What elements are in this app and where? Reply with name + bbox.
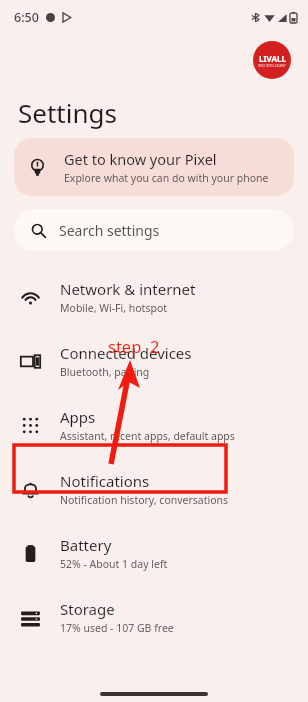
staticText: Network & internet bbox=[60, 279, 196, 299]
button[interactable]: Network & internet bbox=[0, 265, 308, 329]
staticText: Bluetooth, pairing bbox=[60, 365, 150, 379]
staticText: Storage bbox=[60, 599, 115, 619]
staticText: Assistant, recent apps, default apps bbox=[60, 429, 235, 443]
button[interactable]: Notifications bbox=[0, 457, 308, 521]
button[interactable]: Battery bbox=[0, 521, 308, 585]
staticText: Get to know your Pixel bbox=[64, 149, 217, 169]
staticText: RIDE INTELLIGENT bbox=[258, 64, 286, 68]
staticText: 52% - About 1 day left bbox=[60, 557, 168, 571]
button[interactable]: Storage bbox=[0, 585, 308, 649]
staticText: LIVALL bbox=[259, 53, 286, 64]
staticText: Connected devices bbox=[60, 343, 192, 363]
staticText: Notifications bbox=[60, 471, 150, 491]
staticText: Settings bbox=[18, 95, 117, 130]
staticText: step 2 bbox=[108, 335, 160, 357]
staticText: Explore what you can do with your phone bbox=[64, 171, 269, 185]
staticText: 17% used - 107 GB free bbox=[60, 621, 174, 635]
button[interactable]: Connected devices bbox=[0, 329, 308, 393]
staticText: Search settings bbox=[59, 221, 160, 240]
staticText: Apps bbox=[60, 407, 96, 427]
button[interactable]: Account avatar bbox=[253, 41, 291, 79]
staticText: 6:50 bbox=[14, 9, 39, 26]
staticText: Battery bbox=[60, 535, 112, 555]
button[interactable]: Get to know your Pixel bbox=[14, 138, 294, 196]
button[interactable]: Apps bbox=[0, 393, 308, 457]
staticText: Notification history, conversations bbox=[60, 493, 229, 507]
staticText: Mobile, Wi-Fi, hotspot bbox=[60, 301, 168, 315]
button[interactable]: Search settings bbox=[14, 209, 294, 251]
